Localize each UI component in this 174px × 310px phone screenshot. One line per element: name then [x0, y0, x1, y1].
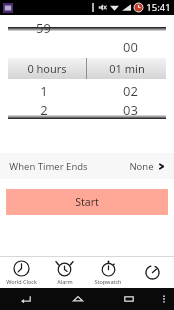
button[interactable]: World Clock — [0, 257, 43, 288]
staticText: 15:41 — [146, 1, 171, 14]
button[interactable]: Stopwatch — [86, 257, 130, 288]
button[interactable]: 01 min — [87, 58, 166, 79]
staticText: 1 — [40, 82, 48, 100]
button[interactable]: Start — [6, 189, 168, 215]
button[interactable]: When Timer Ends — [0, 153, 174, 179]
staticText: 02 — [123, 82, 138, 100]
staticText: 0 hours — [27, 61, 67, 76]
button[interactable]: Recent apps — [103, 288, 154, 310]
staticText: Start — [75, 195, 99, 209]
staticText: 00 — [123, 38, 138, 56]
staticText: Alarm — [57, 278, 73, 285]
staticText: 03 — [123, 101, 138, 119]
staticText: World Clock — [6, 278, 37, 285]
button[interactable]: Alarm — [43, 257, 86, 288]
staticText: 2 — [40, 101, 48, 119]
button[interactable]: More options — [154, 288, 174, 310]
staticText: 01 min — [109, 61, 145, 76]
button[interactable]: Back — [0, 288, 52, 310]
button[interactable]: Timer — [130, 257, 174, 288]
staticText: 59 — [36, 19, 51, 33]
staticText: When Timer Ends — [9, 160, 88, 173]
button[interactable]: 0 hours — [8, 58, 86, 79]
staticText: None — [129, 160, 154, 173]
staticText: Stopwatch — [94, 278, 122, 285]
button[interactable]: Home — [52, 288, 103, 310]
